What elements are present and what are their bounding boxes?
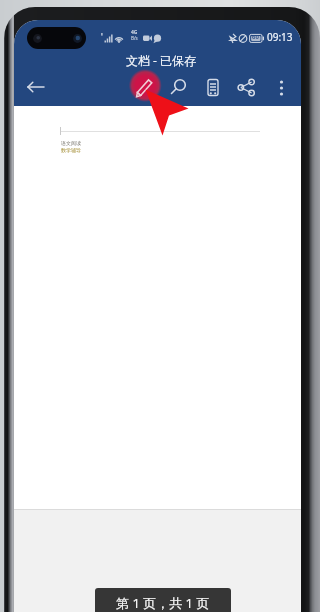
staticText: 60 <box>252 33 259 41</box>
staticText: 09:13 <box>267 30 293 44</box>
button[interactable]: Edit <box>128 68 163 103</box>
staticText: 第 1 页，共 1 页 <box>116 594 210 612</box>
button[interactable]: Mobile view <box>200 75 225 100</box>
button[interactable]: Search <box>166 75 191 100</box>
staticText: 数学辅导 <box>61 147 81 153</box>
button[interactable]: More options <box>269 75 294 100</box>
staticText: 语文阅读 <box>61 140 81 146</box>
button[interactable]: Share <box>234 75 259 100</box>
staticText: 4G <box>131 29 138 36</box>
button[interactable]: Back <box>24 75 48 99</box>
staticText: B/s <box>131 35 138 41</box>
staticText: 文档 - 已保存 <box>126 52 197 68</box>
